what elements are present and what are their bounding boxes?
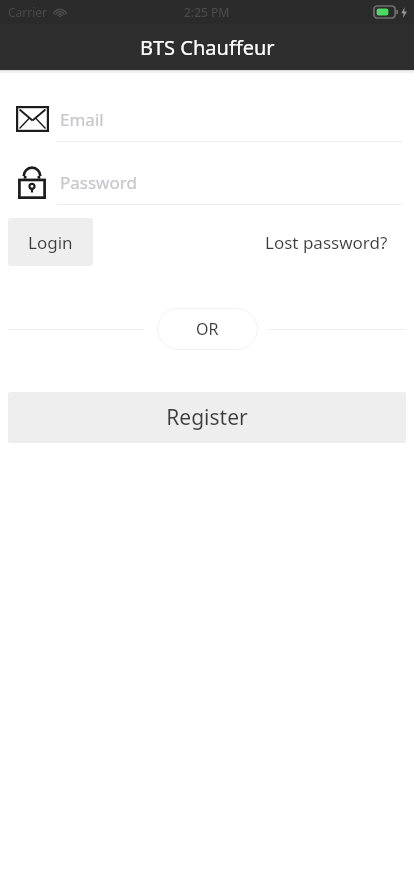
staticText: OR (196, 318, 219, 340)
staticText: Carrier (8, 4, 48, 20)
staticText: Password (60, 171, 137, 194)
staticText: 2:25 PM (184, 4, 230, 20)
other: Email (15, 102, 49, 136)
button[interactable]: Lost password? (261, 225, 392, 260)
button[interactable]: OR (157, 308, 258, 350)
staticText: BTS Chauffeur (140, 34, 275, 61)
other: Password (15, 165, 49, 199)
staticText: Login (28, 231, 73, 254)
staticText: Email (60, 108, 104, 131)
staticText: Lost password? (265, 231, 388, 254)
staticText: Register (166, 403, 248, 432)
button[interactable]: Password (0, 160, 414, 204)
button[interactable]: Register (8, 392, 406, 443)
button[interactable]: Email (0, 97, 414, 141)
button[interactable]: Login (8, 218, 93, 266)
